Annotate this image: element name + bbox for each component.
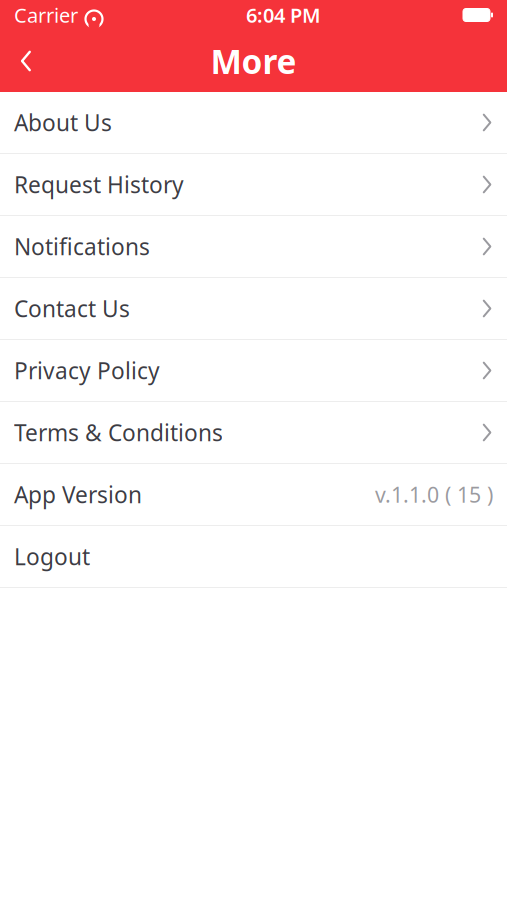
button[interactable]: Terms & Conditions: [0, 402, 507, 464]
button[interactable]: About Us: [0, 92, 507, 154]
staticText: Carrier: [14, 2, 78, 28]
staticText: Terms & Conditions: [14, 417, 223, 447]
staticText: v.1.1.0 ( 15 ): [375, 480, 493, 509]
button[interactable]: Privacy Policy: [0, 340, 507, 402]
staticText: More: [210, 39, 296, 83]
staticText: Logout: [14, 541, 90, 571]
staticText: Privacy Policy: [14, 355, 160, 385]
button[interactable]: Logout: [0, 526, 507, 588]
staticText: 6:04 PM: [246, 2, 321, 28]
staticText: Contact Us: [14, 293, 130, 323]
button[interactable]: Contact Us: [0, 278, 507, 340]
staticText: Request History: [14, 169, 184, 199]
button[interactable]: App Version: [0, 464, 507, 526]
staticText: About Us: [14, 107, 112, 137]
staticText: App Version: [14, 479, 142, 509]
button[interactable]: Back: [0, 36, 52, 86]
staticText: Notifications: [14, 231, 150, 261]
button[interactable]: Notifications: [0, 216, 507, 278]
button[interactable]: Request History: [0, 154, 507, 216]
